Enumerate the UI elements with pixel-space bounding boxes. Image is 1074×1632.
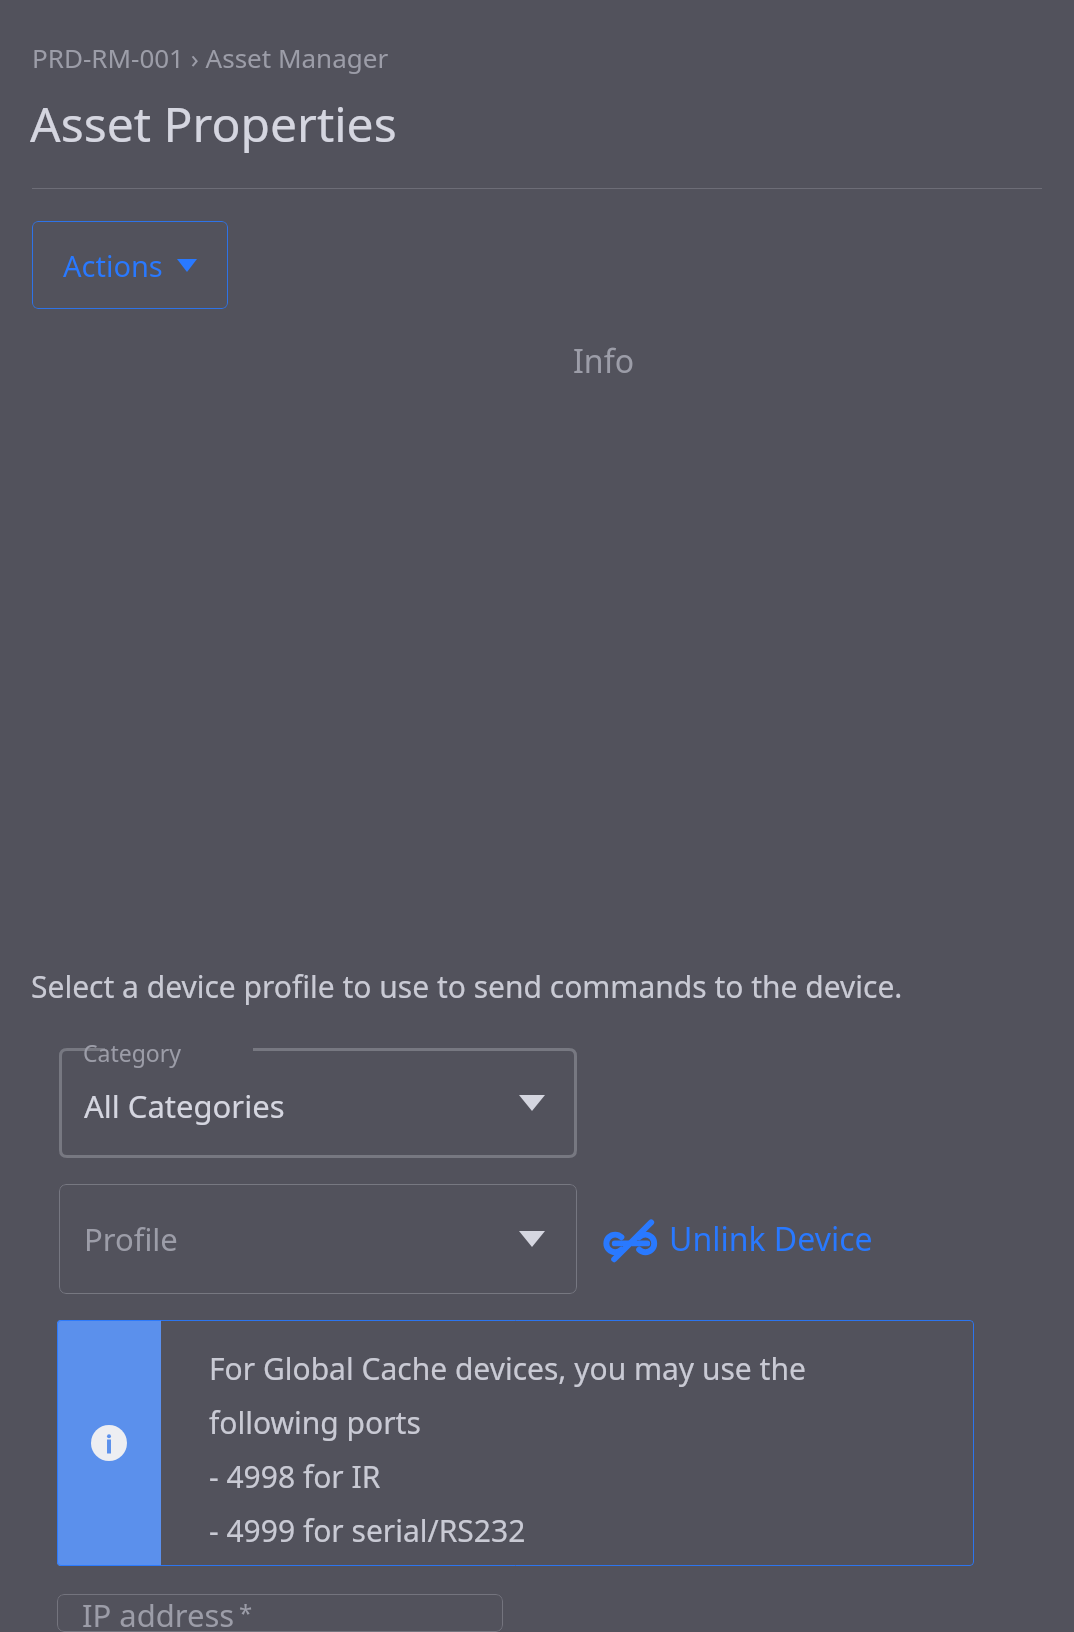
button[interactable]: Unlink Device [599,1209,877,1269]
staticText: Asset Properties [30,91,397,156]
staticText: * [239,1596,253,1629]
other: Unlink Device [603,1217,659,1261]
staticText: Profile [84,1218,178,1260]
button[interactable]: Info [132,329,1074,412]
button[interactable]: All Categories [59,1048,577,1158]
staticText: - 4999 for serial/RS232 [209,1510,526,1551]
staticText: IP address [82,1594,235,1632]
staticText: For Global Cache devices, you may use th… [209,1348,806,1389]
button[interactable]: IP address [57,1594,503,1632]
staticText: PRD-RM-001 › Asset Manager [32,40,389,75]
staticText: Select a device profile to use to send c… [31,966,903,1007]
staticText: - 4998 for IR [209,1456,381,1497]
staticText: Actions [63,246,163,285]
staticText: Info [573,339,634,383]
staticText: Unlink Device [669,1217,873,1261]
button[interactable]: Profile [59,1184,577,1294]
staticText: Category [83,1037,182,1068]
button[interactable]: PRD-RM-001 › Asset Manager [32,40,389,75]
staticText: All Categories [84,1085,285,1127]
button[interactable]: Actions [32,221,228,309]
staticText: following ports [209,1402,421,1443]
